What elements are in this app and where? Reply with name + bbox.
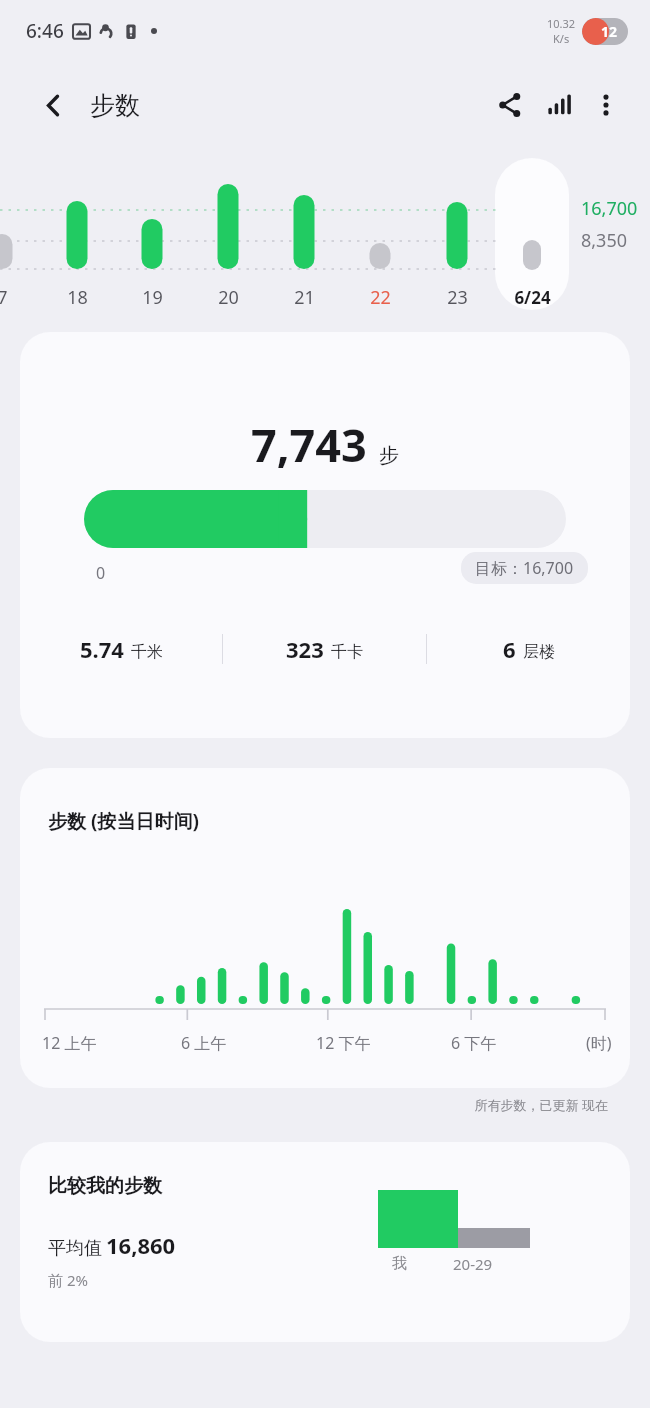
button[interactable]: 20 [198, 282, 258, 312]
button[interactable]: 返回 [30, 82, 76, 128]
button[interactable]: 22 [350, 282, 410, 312]
staticText: 16,700 [581, 196, 638, 221]
staticText: 6:46 [26, 18, 64, 44]
staticText: 6/24 [514, 286, 551, 309]
button[interactable]: 7,743 [20, 332, 630, 738]
staticText: 前 2% [48, 1270, 88, 1290]
staticText: 18 [67, 285, 88, 310]
staticText: 千米 [131, 642, 163, 662]
staticText: 6 [503, 634, 516, 664]
button[interactable]: 目标：16,700 [475, 557, 574, 579]
staticText: 323 [286, 634, 324, 664]
staticText: 平均值 [48, 1237, 102, 1260]
staticText: 12 下午 [316, 1032, 451, 1054]
button[interactable]: 23 [427, 282, 487, 312]
staticText: 7,743 [251, 414, 367, 475]
button[interactable]: 更多选项 [582, 81, 630, 129]
staticText: 步 [379, 443, 399, 468]
staticText: 0 [96, 562, 106, 584]
staticText: 比较我的步数 [48, 1174, 162, 1198]
staticText: 5.74 [80, 634, 124, 664]
button[interactable]: 比较我的步数 [20, 1142, 630, 1342]
staticText: 23 [447, 285, 468, 310]
staticText: 目标：16,700 [475, 557, 574, 579]
button[interactable]: 6/24 [502, 282, 562, 312]
staticText: 20 [218, 285, 239, 310]
staticText: 12 [601, 22, 618, 41]
staticText: K/s [553, 31, 570, 46]
button[interactable]: 统计图表 [534, 81, 582, 129]
button[interactable]: 18 [47, 282, 107, 312]
button[interactable]: 步数 (按当日时间) [20, 768, 630, 1088]
staticText: 10.32 [547, 16, 576, 31]
staticText: 所有步数，已更新 现在 [0, 1096, 608, 1114]
staticText: 6 上午 [181, 1032, 316, 1054]
staticText: 19 [142, 285, 163, 310]
staticText: 8,350 [581, 228, 628, 253]
staticText: 步数 [90, 90, 140, 121]
staticText: 千卡 [331, 642, 363, 662]
staticText: 22 [370, 285, 391, 310]
button[interactable]: 7 [0, 282, 32, 312]
staticText: 20-29 [453, 1254, 493, 1274]
staticText: 步数 (按当日时间) [48, 808, 199, 834]
staticText: 层楼 [523, 642, 555, 662]
button[interactable]: 19 [122, 282, 182, 312]
staticText: 12 上午 [42, 1032, 181, 1054]
staticText: 21 [294, 285, 315, 310]
staticText: 16,860 [106, 1230, 176, 1260]
staticText: 6 下午 [451, 1032, 586, 1054]
staticText: (时) [586, 1032, 612, 1054]
staticText: 7 [0, 285, 8, 310]
button[interactable]: 21 [274, 282, 334, 312]
staticText: 我 [392, 1254, 407, 1273]
button[interactable]: 分享 [486, 81, 534, 129]
